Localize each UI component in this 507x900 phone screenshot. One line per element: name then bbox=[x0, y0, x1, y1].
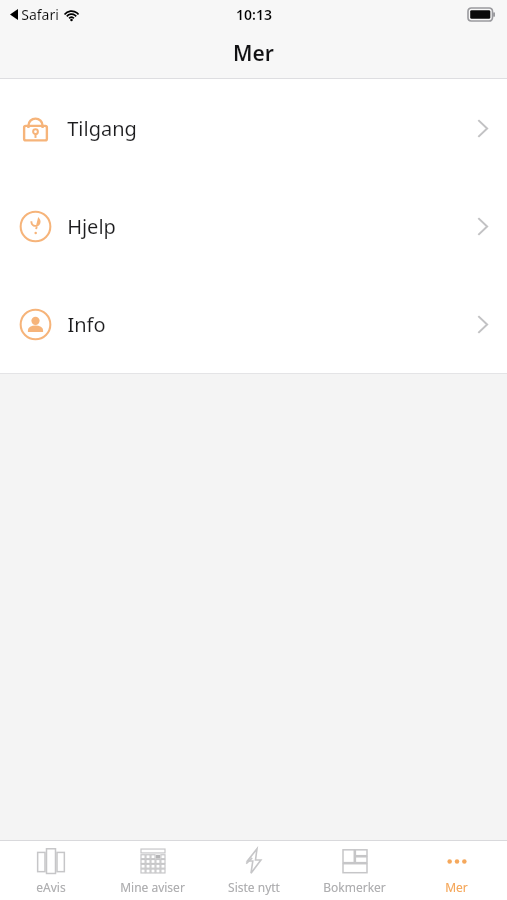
staticText: Bokmerker bbox=[323, 879, 386, 895]
button[interactable]: Bokmerker bbox=[304, 841, 405, 900]
button[interactable]: Hjelp bbox=[0, 177, 507, 275]
button[interactable]: Mine aviser bbox=[102, 841, 203, 900]
staticText: Info bbox=[67, 311, 106, 338]
button[interactable]: Siste nytt bbox=[203, 841, 304, 900]
staticText: eAvis bbox=[36, 879, 66, 895]
staticText: Mer bbox=[445, 879, 468, 895]
staticText: Mer bbox=[233, 39, 274, 68]
staticText: Safari bbox=[21, 5, 59, 24]
button[interactable]: Mer bbox=[406, 841, 507, 900]
staticText: Mine aviser bbox=[120, 879, 185, 895]
staticText: Tilgang bbox=[67, 115, 137, 142]
button[interactable]: Tilgang bbox=[0, 79, 507, 177]
staticText: Hjelp bbox=[67, 213, 116, 240]
button[interactable]: eAvis bbox=[0, 841, 101, 900]
staticText: 10:13 bbox=[236, 5, 272, 24]
staticText: Siste nytt bbox=[228, 879, 280, 895]
button[interactable]: Info bbox=[0, 275, 507, 373]
